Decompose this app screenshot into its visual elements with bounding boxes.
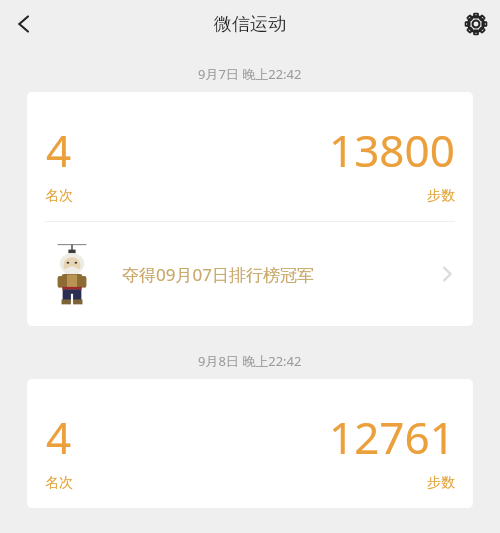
- staticText: 12761: [329, 407, 455, 467]
- button[interactable]: 4: [27, 379, 473, 508]
- staticText: 4: [46, 120, 72, 180]
- button[interactable]: Settings: [452, 0, 500, 48]
- button[interactable]: Back: [0, 0, 48, 48]
- button[interactable]: 4: [27, 92, 473, 326]
- staticText: 9月8日 晚上22:42: [198, 352, 302, 370]
- staticText: 夺得09月07日排行榜冠军: [122, 263, 425, 286]
- staticText: 13800: [329, 120, 455, 180]
- staticText: 名次: [45, 474, 73, 492]
- other: More: [425, 252, 469, 296]
- button[interactable]: 夺得09月07日排行榜冠军: [27, 222, 473, 326]
- staticText: 步数: [427, 187, 455, 205]
- staticText: 9月7日 晚上22:42: [198, 65, 302, 83]
- staticText: 步数: [427, 474, 455, 492]
- staticText: 微信运动: [214, 13, 286, 36]
- staticText: 名次: [45, 187, 73, 205]
- staticText: 4: [46, 407, 72, 467]
